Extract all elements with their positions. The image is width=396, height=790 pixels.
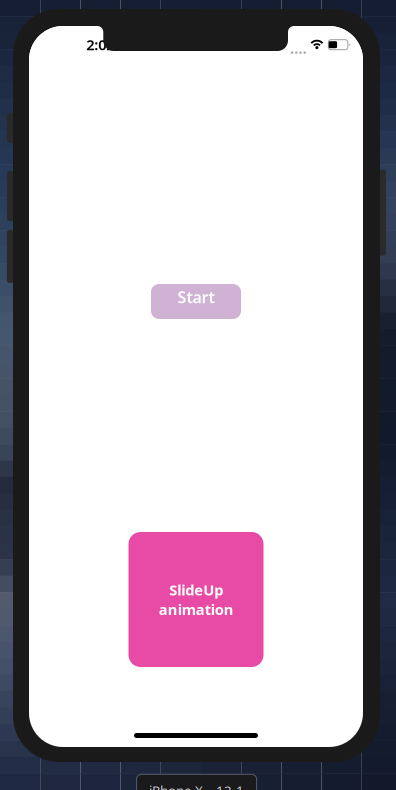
staticText: Start xyxy=(177,286,214,308)
staticText: iPhone X – 12.1 xyxy=(149,781,244,790)
staticText: SlideUp animation xyxy=(158,580,233,619)
button[interactable]: Start xyxy=(151,284,241,319)
button[interactable]: SlideUp animation xyxy=(128,532,263,667)
staticText: 2:02 xyxy=(86,35,114,54)
